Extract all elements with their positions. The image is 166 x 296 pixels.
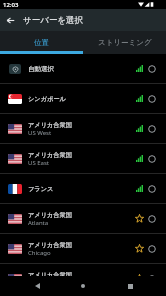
staticText: 自動選択 (28, 65, 54, 73)
staticText: US East (28, 159, 49, 167)
button[interactable]: アメリカ合衆国 (0, 204, 166, 233)
button[interactable]: Back (0, 9, 20, 31)
button[interactable]: ストリーミング (83, 31, 166, 54)
button[interactable]: Back (27, 276, 47, 296)
staticText: アメリカ合衆国 (28, 121, 72, 129)
button[interactable]: アメリカ合衆国 (0, 144, 166, 173)
button[interactable]: フランス (0, 174, 166, 203)
button[interactable]: アメリカ合衆国 (0, 264, 166, 293)
staticText: Atlanta (28, 219, 49, 227)
staticText: フランス (28, 185, 54, 193)
button[interactable]: Favorite (135, 274, 144, 283)
staticText: 位置 (34, 38, 49, 47)
staticText: Dallas (28, 279, 46, 287)
button[interactable]: アメリカ合衆国 (0, 234, 166, 263)
staticText: アメリカ合衆国 (28, 151, 72, 159)
staticText: 12:03 (3, 1, 19, 9)
button[interactable]: アメリカ合衆国 (0, 114, 166, 143)
staticText: アメリカ合衆国 (28, 271, 72, 279)
button[interactable]: Favorite (135, 244, 144, 253)
button[interactable]: 位置 (0, 31, 83, 54)
staticText: Chicago (28, 249, 51, 257)
button[interactable]: 自動選択 (0, 54, 166, 83)
staticText: ストリーミング (98, 38, 152, 47)
staticText: シンガポール (28, 95, 66, 103)
button[interactable]: Home (73, 276, 93, 296)
staticText: US West (28, 129, 52, 137)
button[interactable]: Favorite (135, 214, 144, 223)
staticText: アメリカ合衆国 (28, 241, 72, 249)
staticText: アメリカ合衆国 (28, 211, 72, 219)
button[interactable]: シンガポール (0, 84, 166, 113)
staticText: サーバーを選択 (23, 15, 84, 26)
button[interactable]: Recents (120, 276, 140, 296)
